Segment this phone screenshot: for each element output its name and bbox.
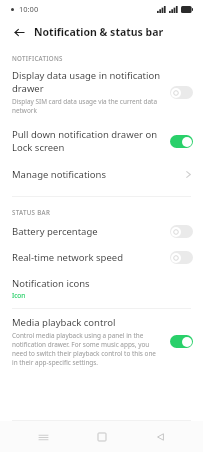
button[interactable]: Recents bbox=[28, 422, 58, 452]
staticText: Control media playback using a panel in … bbox=[12, 331, 162, 367]
button[interactable]: Back bbox=[10, 23, 28, 41]
staticText: Battery percentage bbox=[12, 225, 98, 238]
button[interactable]: On bbox=[170, 335, 193, 348]
staticText: 10:00 bbox=[19, 4, 39, 14]
button[interactable]: Notification icons bbox=[0, 273, 203, 308]
staticText: Real-time network speed bbox=[12, 251, 123, 264]
button[interactable]: On bbox=[170, 135, 193, 148]
staticText: NOTIFICATIONS bbox=[12, 54, 63, 62]
button[interactable]: Back bbox=[145, 422, 175, 452]
staticText: Pull down notification drawer on Lock sc… bbox=[12, 128, 162, 154]
staticText: Manage notifications bbox=[12, 168, 186, 181]
button[interactable]: Home bbox=[87, 422, 117, 452]
button[interactable]: Battery percentage bbox=[0, 221, 203, 247]
button[interactable]: Manage notifications bbox=[0, 162, 203, 189]
staticText: Notification icons bbox=[12, 277, 90, 290]
staticText: Notification & status bar bbox=[34, 25, 164, 39]
button[interactable]: Off bbox=[170, 225, 193, 238]
button[interactable]: Off bbox=[170, 86, 193, 99]
staticText: Display SIM card data usage via the curr… bbox=[12, 97, 162, 115]
staticText: STATUS BAR bbox=[12, 208, 51, 216]
staticText: Display data usage in notification drawe… bbox=[12, 69, 162, 95]
button[interactable]: Off bbox=[170, 251, 193, 264]
button[interactable]: Media playback control bbox=[0, 316, 203, 375]
button[interactable]: Pull down notification drawer on Lock sc… bbox=[0, 122, 203, 162]
staticText: Media playback control bbox=[12, 316, 116, 329]
button[interactable]: Display data usage in notification drawe… bbox=[0, 67, 203, 122]
button[interactable]: Real-time network speed bbox=[0, 247, 203, 273]
staticText: Icon bbox=[12, 291, 26, 300]
